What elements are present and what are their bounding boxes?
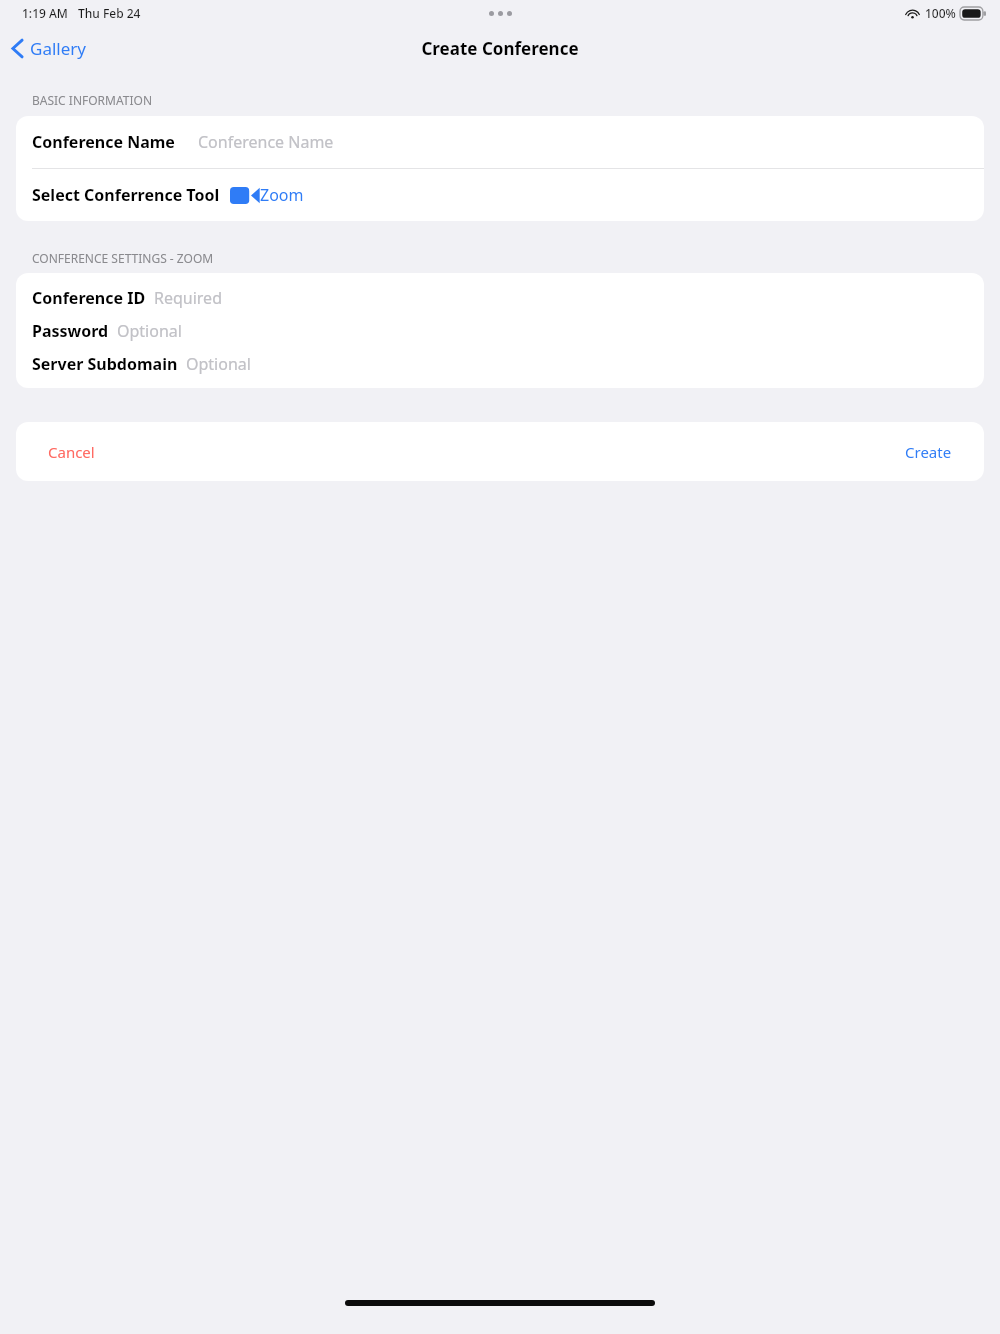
button[interactable]: Select Conferrence Tool: [16, 169, 984, 221]
staticText: 1:19 AM: [22, 5, 68, 21]
staticText: Required: [154, 287, 222, 309]
staticText: Optional: [186, 353, 251, 375]
staticText: Create: [905, 442, 952, 462]
staticText: Gallery: [30, 37, 86, 60]
button[interactable]: Password: [16, 314, 984, 347]
other: Zoom video conferencing: [230, 187, 260, 204]
staticText: BASIC INFORMATION: [32, 92, 153, 108]
button[interactable]: Gallery: [0, 31, 98, 66]
staticText: Optional: [117, 320, 182, 342]
staticText: Create Conference: [421, 37, 579, 60]
staticText: Thu Feb 24: [78, 5, 141, 21]
staticText: Cancel: [48, 442, 95, 462]
staticText: CONFERENCE SETTINGS - ZOOM: [32, 250, 214, 266]
button[interactable]: Server Subdomain: [16, 347, 984, 380]
staticText: Conference Name: [32, 131, 175, 153]
button[interactable]: Create: [889, 434, 984, 470]
staticText: Conference Name: [198, 131, 334, 153]
staticText: Zoom: [260, 184, 304, 206]
staticText: 100%: [925, 5, 956, 21]
staticText: Server Subdomain: [32, 353, 178, 375]
button[interactable]: Conference ID: [16, 281, 984, 314]
staticText: Select Conferrence Tool: [32, 184, 220, 206]
staticText: Password: [32, 320, 109, 342]
button[interactable]: Cancel: [16, 434, 111, 470]
staticText: Conference ID: [32, 287, 146, 309]
button[interactable]: Conference Name: [16, 116, 984, 168]
